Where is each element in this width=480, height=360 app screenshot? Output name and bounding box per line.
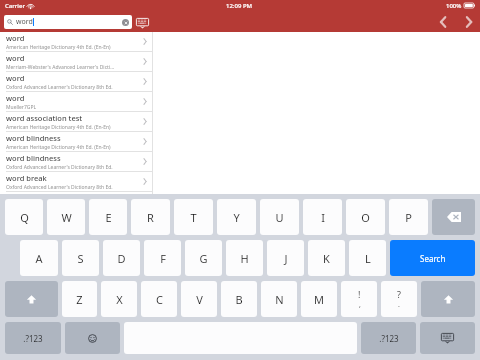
- button[interactable]: word: [0, 32, 152, 52]
- button[interactable]: Forward: [460, 13, 478, 31]
- staticText: Oxford Advanced Learner's Dictionary 8th…: [6, 164, 113, 171]
- staticText: Carrier: [5, 2, 25, 10]
- staticText: word blindness: [6, 153, 61, 163]
- staticText: L: [365, 251, 371, 266]
- button[interactable]: X: [101, 281, 137, 317]
- staticText: word association test: [6, 113, 83, 123]
- button[interactable]: D: [103, 240, 140, 276]
- staticText: Oxford Advanced Learner's Dictionary 8th…: [6, 184, 113, 191]
- staticText: Merriam-Webster's Advanced Learner's Dic…: [6, 64, 115, 71]
- staticText: ?: [397, 288, 401, 300]
- staticText: O: [361, 210, 370, 225]
- button[interactable]: Emoji: [65, 322, 120, 354]
- staticText: T: [190, 210, 197, 225]
- button[interactable]: F: [144, 240, 181, 276]
- staticText: .?123: [379, 333, 399, 344]
- button[interactable]: G: [185, 240, 222, 276]
- button[interactable]: R: [131, 199, 170, 235]
- button[interactable]: Backspace: [432, 199, 475, 235]
- button[interactable]: word break: [0, 172, 152, 192]
- button[interactable]: Shift: [421, 281, 475, 317]
- button[interactable]: word: [4, 15, 132, 29]
- staticText: Z: [76, 292, 83, 307]
- button[interactable]: ?: [381, 281, 417, 317]
- staticText: American Heritage Dictionary 4th Ed. (En…: [6, 44, 111, 51]
- button[interactable]: K: [308, 240, 345, 276]
- staticText: G: [199, 251, 208, 266]
- button[interactable]: V: [181, 281, 217, 317]
- button[interactable]: U: [260, 199, 299, 235]
- button[interactable]: word blindness: [0, 152, 152, 172]
- staticText: word: [16, 17, 33, 27]
- staticText: American Heritage Dictionary 4th Ed. (En…: [6, 124, 111, 131]
- staticText: B: [235, 292, 243, 307]
- button[interactable]: L: [349, 240, 386, 276]
- staticText: F: [160, 251, 166, 266]
- staticText: !: [358, 288, 361, 300]
- staticText: M: [314, 292, 324, 307]
- button[interactable]: Keyboard: [136, 17, 149, 28]
- staticText: C: [156, 292, 163, 307]
- staticText: E: [105, 210, 112, 225]
- staticText: word break: [6, 173, 47, 183]
- button[interactable]: Z: [62, 281, 97, 317]
- button[interactable]: H: [226, 240, 263, 276]
- button[interactable]: Back: [434, 13, 452, 31]
- staticText: K: [323, 251, 330, 266]
- button[interactable]: Y: [217, 199, 256, 235]
- staticText: Oxford Advanced Learner's Dictionary 8th…: [6, 84, 113, 91]
- button[interactable]: Hide keyboard: [420, 322, 475, 354]
- staticText: V: [196, 292, 203, 307]
- button[interactable]: N: [261, 281, 297, 317]
- button[interactable]: .?123: [5, 322, 61, 354]
- button[interactable]: O: [346, 199, 385, 235]
- staticText: American Heritage Dictionary 4th Ed. (En…: [6, 144, 111, 151]
- button[interactable]: !: [341, 281, 377, 317]
- staticText: word: [6, 73, 25, 83]
- button[interactable]: word association test: [0, 112, 152, 132]
- button[interactable]: W: [47, 199, 85, 235]
- staticText: P: [405, 210, 412, 225]
- staticText: U: [275, 210, 284, 225]
- button[interactable]: word: [0, 52, 152, 72]
- staticText: I: [321, 210, 325, 225]
- staticText: S: [77, 251, 84, 266]
- button[interactable]: B: [221, 281, 257, 317]
- button[interactable]: E: [89, 199, 127, 235]
- staticText: word blindness: [6, 133, 61, 143]
- staticText: 100%: [446, 2, 462, 10]
- staticText: word: [6, 53, 25, 63]
- button[interactable]: word: [0, 92, 152, 112]
- staticText: ,: [359, 300, 361, 310]
- button[interactable]: J: [267, 240, 304, 276]
- button[interactable]: A: [20, 240, 58, 276]
- staticText: .: [398, 300, 400, 310]
- button[interactable]: P: [389, 199, 428, 235]
- staticText: word: [6, 93, 25, 103]
- staticText: .?123: [23, 333, 43, 344]
- button[interactable]: C: [141, 281, 177, 317]
- staticText: Q: [20, 210, 29, 225]
- staticText: A: [35, 251, 43, 266]
- staticText: J: [284, 251, 288, 266]
- staticText: word: [6, 33, 25, 43]
- button[interactable]: .?123: [361, 322, 416, 354]
- button[interactable]: word blindness: [0, 132, 152, 152]
- staticText: D: [117, 251, 126, 266]
- button[interactable]: Shift: [5, 281, 58, 317]
- button[interactable]: Q: [5, 199, 43, 235]
- button[interactable]: S: [62, 240, 99, 276]
- staticText: H: [240, 251, 249, 266]
- staticText: Mueller7GPL: [6, 104, 37, 111]
- button[interactable]: I: [303, 199, 342, 235]
- staticText: 12:09 PM: [226, 2, 253, 10]
- staticText: X: [116, 292, 123, 307]
- button[interactable]: M: [301, 281, 337, 317]
- button[interactable]: Clear text: [122, 19, 129, 26]
- staticText: Y: [233, 210, 240, 225]
- button[interactable]: Search: [390, 240, 475, 276]
- staticText: N: [275, 292, 284, 307]
- button[interactable]: word: [0, 72, 152, 92]
- button[interactable]: T: [174, 199, 213, 235]
